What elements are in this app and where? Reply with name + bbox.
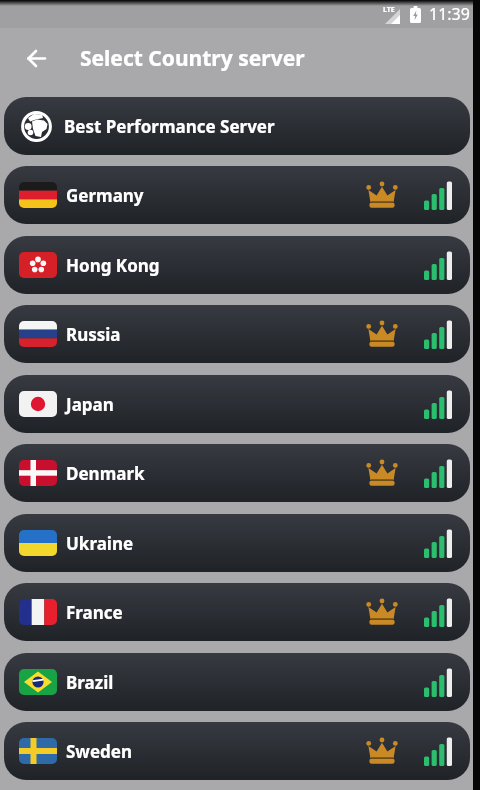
staticText: Best Performance Server [64,115,275,138]
staticText: 11:39 [429,3,470,25]
button[interactable]: Japan [4,375,470,433]
staticText: Select Country server [80,44,305,73]
staticText: Ukraine [66,532,134,555]
staticText: LTE [383,5,395,15]
button[interactable]: Russia [4,305,470,363]
staticText: Denmark [66,462,145,485]
button[interactable]: Ukraine [4,514,470,572]
staticText: Russia [66,323,121,346]
staticText: Germany [66,184,144,207]
staticText: Hong Kong [66,254,160,277]
staticText: Sweden [66,740,133,763]
staticText: Japan [66,393,114,416]
button[interactable] [21,43,51,73]
button[interactable]: Brazil [4,653,470,711]
staticText: France [66,601,123,624]
button[interactable]: Hong Kong [4,236,470,294]
button[interactable]: Best Performance Server [4,97,470,155]
button[interactable]: Denmark [4,444,470,502]
button[interactable]: Sweden [4,722,470,780]
button[interactable]: France [4,583,470,641]
button[interactable]: Germany [4,166,470,224]
staticText: Brazil [66,671,114,694]
